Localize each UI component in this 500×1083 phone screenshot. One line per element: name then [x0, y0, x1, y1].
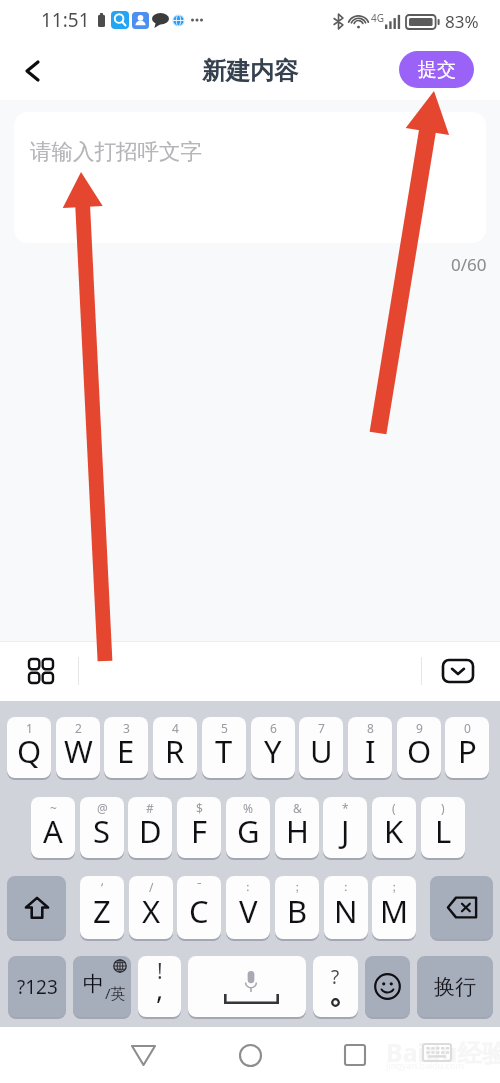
staticText: A [43, 810, 63, 852]
button[interactable]: Shift [7, 876, 66, 939]
button[interactable]: # [128, 797, 172, 858]
button[interactable]: ˉ [177, 876, 221, 939]
staticText: / [149, 879, 154, 895]
staticText: P [458, 730, 477, 772]
staticText: ‘ [101, 879, 104, 895]
button[interactable]: Home [226, 1031, 274, 1079]
staticText: Q [17, 730, 42, 772]
button[interactable]: ? [313, 956, 358, 1017]
staticText: N [334, 890, 358, 932]
button[interactable]: ( [372, 797, 416, 858]
button[interactable]: 提交 [399, 51, 474, 88]
staticText: 4 [172, 720, 179, 736]
staticText: ： [242, 879, 254, 894]
staticText: 提交 [418, 58, 456, 82]
button[interactable]: 0 [445, 717, 489, 778]
button[interactable]: ； [372, 876, 416, 939]
button[interactable]: % [226, 797, 270, 858]
button[interactable]: ； [275, 876, 319, 939]
staticText: # [146, 800, 154, 816]
staticText: ˉ [197, 879, 202, 895]
button[interactable]: ?123 [8, 956, 66, 1017]
button[interactable]: Recents [331, 1031, 379, 1079]
staticText: ~ [50, 800, 57, 816]
button[interactable]: ‘ [80, 876, 124, 939]
staticText: 3 [123, 720, 130, 736]
button[interactable]: Hide keyboard [436, 649, 480, 693]
button[interactable]: Keyboard layouts [19, 649, 63, 693]
staticText: G [237, 810, 260, 852]
staticText: Baidu经验 [386, 1035, 500, 1069]
staticText: 新建内容 [202, 56, 298, 86]
staticText: ) [441, 800, 445, 816]
staticText: R [165, 730, 185, 772]
staticText: O [407, 730, 432, 772]
button[interactable]: @ [80, 797, 124, 858]
button[interactable]: 换行 [417, 956, 493, 1017]
staticText: ； [388, 879, 400, 894]
staticText: 9 [416, 720, 423, 736]
staticText: ( [392, 800, 396, 816]
button[interactable]: ~ [31, 797, 75, 858]
button[interactable]: Space [188, 956, 306, 1017]
staticText: 4G [371, 11, 384, 25]
staticText: K [384, 810, 404, 852]
button[interactable]: 请输入打招呼文字 [14, 112, 486, 243]
staticText: 1 [26, 720, 33, 736]
button[interactable]: 8 [348, 717, 392, 778]
staticText: M [380, 890, 409, 932]
staticText: 中 [83, 971, 104, 997]
staticText: 83% [445, 10, 479, 33]
button[interactable]: Back [10, 50, 54, 94]
staticText: 11:51 [41, 7, 90, 33]
staticText: V [239, 890, 258, 932]
staticText: Z [93, 890, 111, 932]
staticText: U [310, 730, 333, 772]
button[interactable]: 1 [7, 717, 51, 778]
staticText: C [189, 890, 209, 932]
staticText: 请输入打招呼文字 [30, 138, 202, 165]
button[interactable]: 2 [56, 717, 100, 778]
button[interactable]: * [323, 797, 367, 858]
staticText: J [341, 810, 350, 852]
staticText: 8 [367, 720, 374, 736]
button[interactable]: 7 [299, 717, 343, 778]
staticText: * [342, 800, 349, 816]
staticText: ? [331, 964, 340, 990]
button[interactable]: & [275, 797, 319, 858]
staticText: & [293, 800, 302, 816]
staticText: $ [196, 800, 203, 816]
staticText: % [243, 800, 253, 816]
button[interactable]: ： [324, 876, 368, 939]
staticText: ； [291, 879, 303, 894]
staticText: ： [340, 879, 352, 894]
staticText: E [117, 730, 135, 772]
button[interactable]: Emoji [365, 956, 410, 1017]
staticText: D [139, 810, 162, 852]
button[interactable]: 9 [397, 717, 441, 778]
staticText: W [64, 730, 93, 772]
staticText: 6 [270, 720, 277, 736]
button[interactable]: 3 [104, 717, 148, 778]
staticText: @ [97, 800, 108, 816]
button[interactable]: $ [177, 797, 221, 858]
button[interactable]: / [129, 876, 173, 939]
button[interactable]: ! [138, 956, 181, 1017]
button[interactable]: 5 [202, 717, 246, 778]
staticText: H [286, 810, 309, 852]
button[interactable]: 4 [153, 717, 197, 778]
button[interactable]: Backspace [430, 876, 493, 939]
staticText: , [156, 970, 164, 1007]
button[interactable]: 中 [73, 956, 131, 1017]
staticText: 0/60 [451, 253, 487, 276]
staticText: jingyan.baidu.com [386, 1059, 464, 1071]
button[interactable]: ) [421, 797, 465, 858]
button[interactable]: Back [119, 1031, 167, 1079]
button[interactable]: 6 [251, 717, 295, 778]
staticText: T [215, 730, 233, 772]
staticText: F [191, 810, 208, 852]
staticText: ! [157, 957, 163, 986]
button[interactable]: ： [226, 876, 270, 939]
staticText: ?123 [17, 974, 58, 1000]
staticText: B [287, 890, 308, 932]
